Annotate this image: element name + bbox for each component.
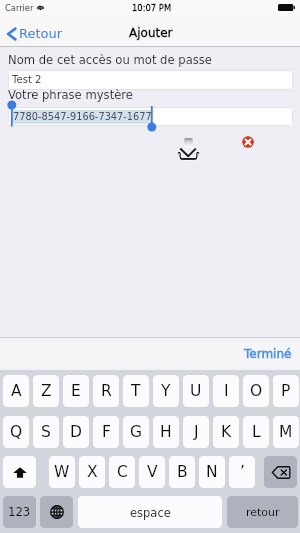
button[interactable]: I <box>213 375 239 407</box>
button[interactable]: espace <box>78 496 222 528</box>
button[interactable]: U <box>183 375 209 407</box>
button[interactable]: Q <box>3 416 29 448</box>
button[interactable]: H <box>153 416 179 448</box>
button[interactable]: Z <box>33 375 59 407</box>
staticText: B <box>177 463 188 481</box>
staticText: J <box>194 423 199 441</box>
button[interactable]: Y <box>153 375 179 407</box>
staticText: S <box>41 423 51 441</box>
button[interactable]: S <box>33 416 59 448</box>
staticText: espace <box>130 506 171 519</box>
button[interactable]: F <box>93 416 119 448</box>
staticText: Votre phrase mystère <box>8 88 133 102</box>
button[interactable]: Effacer <box>242 136 254 148</box>
staticText: O <box>250 382 263 400</box>
staticText: Nom de cet accès ou mot de passe <box>8 53 212 67</box>
staticText: G <box>130 423 143 441</box>
staticText: L <box>252 423 261 441</box>
button[interactable]: Majuscule <box>3 456 36 488</box>
button[interactable]: C <box>109 456 135 488</box>
staticText: Q <box>10 423 23 441</box>
staticText: ’ <box>240 463 245 481</box>
staticText: Y <box>161 382 171 400</box>
button[interactable]: O <box>243 375 269 407</box>
staticText: K <box>221 423 232 441</box>
staticText: M <box>279 423 293 441</box>
button[interactable]: 7780-8547-9166-7347-1677 <box>8 107 293 126</box>
staticText: T <box>131 382 141 400</box>
staticText: Carrier <box>5 3 34 13</box>
button[interactable]: A <box>3 375 29 407</box>
staticText: Z <box>41 382 52 400</box>
button[interactable]: 123 <box>3 496 36 528</box>
button[interactable]: T <box>123 375 149 407</box>
button[interactable]: Changer de clavier <box>40 496 73 528</box>
button[interactable]: X <box>79 456 105 488</box>
button[interactable]: B <box>169 456 195 488</box>
staticText: Retour <box>19 26 63 41</box>
staticText: N <box>206 463 218 481</box>
button[interactable]: G <box>123 416 149 448</box>
staticText: D <box>70 423 82 441</box>
staticText: F <box>102 423 111 441</box>
staticText: I <box>224 382 229 400</box>
staticText: R <box>101 382 112 400</box>
button[interactable]: L <box>243 416 269 448</box>
button[interactable]: N <box>199 456 225 488</box>
button[interactable]: V <box>139 456 165 488</box>
button[interactable]: R <box>93 375 119 407</box>
staticText: Terminé <box>244 347 292 361</box>
button[interactable]: E <box>63 375 89 407</box>
button[interactable]: P <box>273 375 299 407</box>
button[interactable]: K <box>213 416 239 448</box>
staticText: 7780-8547-9166-7347-1677 <box>13 111 152 122</box>
button[interactable]: W <box>49 456 75 488</box>
button[interactable]: Retour <box>0 22 66 45</box>
staticText: 123 <box>8 505 31 519</box>
staticText: retour <box>246 506 280 519</box>
button[interactable]: Test 2 <box>8 70 293 90</box>
staticText: E <box>71 382 81 400</box>
staticText: Test 2 <box>12 74 42 86</box>
staticText: 10:07 PM <box>132 3 172 13</box>
staticText: P <box>281 382 291 400</box>
staticText: U <box>190 382 202 400</box>
button[interactable]: D <box>63 416 89 448</box>
button[interactable]: Importer <box>177 138 200 160</box>
staticText: X <box>87 463 98 481</box>
button[interactable]: M <box>273 416 299 448</box>
button[interactable]: retour <box>227 496 298 528</box>
staticText: C <box>117 463 128 481</box>
button[interactable]: J <box>183 416 209 448</box>
button[interactable]: Supprimer <box>264 456 297 488</box>
staticText: Ajouter <box>129 26 173 40</box>
button[interactable]: ’ <box>229 456 255 488</box>
staticText: W <box>54 463 70 481</box>
button[interactable]: Terminé <box>232 340 300 368</box>
staticText: V <box>147 463 158 481</box>
staticText: A <box>11 382 22 400</box>
staticText: H <box>160 423 172 441</box>
